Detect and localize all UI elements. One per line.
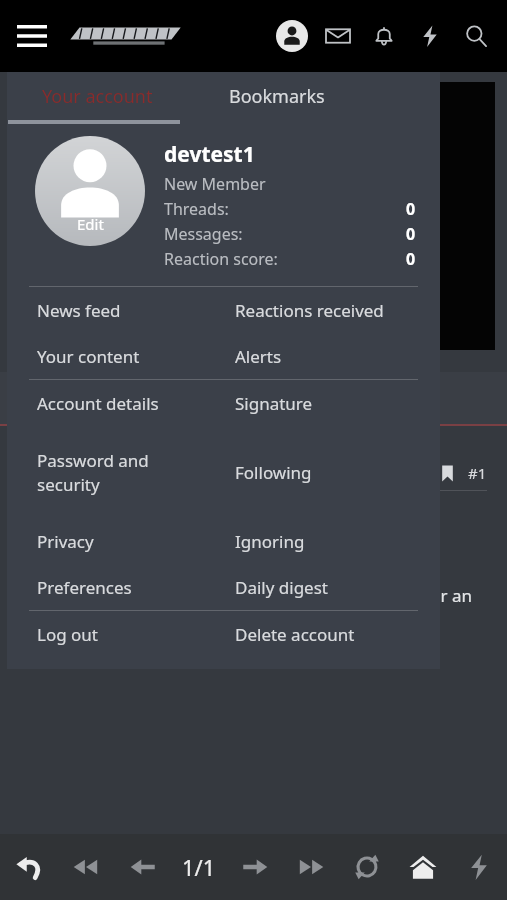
button[interactable]: Delete account	[221, 611, 440, 657]
button[interactable]: Alerts	[221, 333, 440, 379]
staticText: Messages:	[164, 223, 243, 245]
staticText: Reaction score:	[164, 248, 278, 270]
staticText: New Member	[164, 173, 266, 195]
button[interactable]: Alerts	[361, 13, 407, 59]
button[interactable]: Edit	[35, 136, 416, 270]
button[interactable]: Your account	[269, 13, 315, 59]
button[interactable]: Following	[221, 426, 440, 518]
staticText: Password and security	[37, 449, 149, 496]
button[interactable]: Reply	[0, 834, 57, 900]
button[interactable]: Ignoring	[221, 518, 440, 564]
staticText: 0	[406, 223, 416, 245]
staticText: Log out	[37, 623, 98, 646]
staticText: Threads:	[164, 198, 229, 220]
button[interactable]: Signature	[221, 380, 440, 426]
staticText: Reactions received	[235, 299, 384, 322]
button[interactable]: Reactions received	[221, 287, 440, 333]
staticText: devtest1	[164, 140, 255, 169]
staticText: Daily digest	[235, 576, 328, 599]
button[interactable]: First page	[57, 834, 114, 900]
button[interactable]: Password and security	[7, 426, 221, 518]
button[interactable]: Search	[453, 13, 499, 59]
button[interactable]: Inbox	[315, 13, 361, 59]
button[interactable]: Menu	[8, 12, 56, 60]
staticText: #1	[468, 463, 487, 483]
button[interactable]: Account details	[7, 380, 221, 426]
staticText: 0	[406, 248, 416, 270]
staticText: News feed	[37, 299, 121, 322]
button[interactable]: Refresh	[339, 834, 395, 900]
staticText: Delete account	[235, 623, 355, 646]
staticText: Preferences	[37, 576, 132, 599]
button[interactable]: Home	[395, 834, 451, 900]
staticText: Your account	[42, 84, 153, 109]
button[interactable]: Log out	[7, 611, 221, 657]
button[interactable]: Privacy	[7, 518, 221, 564]
staticText: Signature	[235, 392, 313, 415]
button[interactable]: Your content	[7, 333, 221, 379]
staticText: Following	[235, 461, 312, 484]
staticText: 0	[406, 198, 416, 220]
button[interactable]: What's new	[451, 834, 507, 900]
staticText: Bookmarks	[229, 84, 325, 109]
staticText: Edit	[77, 214, 104, 234]
staticText: Account details	[37, 392, 159, 415]
button[interactable]: Your account	[7, 72, 187, 120]
staticText: We have completed a detailed root cause …	[24, 584, 483, 634]
button[interactable]: News feed	[7, 287, 221, 333]
staticText: 1/1	[182, 852, 216, 882]
staticText: Privacy	[37, 530, 94, 553]
button[interactable]: Previous page	[114, 834, 171, 900]
button[interactable]: 1/1	[171, 834, 227, 900]
button[interactable]: Gladiator Forum home	[68, 21, 183, 51]
button[interactable]: Daily digest	[221, 564, 440, 610]
button[interactable]: Last page	[283, 834, 339, 900]
button[interactable]: Next page	[227, 834, 283, 900]
button[interactable]: Bookmarks	[187, 72, 367, 120]
button[interactable]: Preferences	[7, 564, 221, 610]
staticText: :::Attention JT Flush Tail Light Owners …	[24, 511, 483, 562]
staticText: Alerts	[235, 345, 282, 368]
staticText: Ignoring	[235, 530, 305, 553]
button[interactable]: Bookmark	[432, 458, 462, 488]
staticText: Your content	[37, 345, 140, 368]
staticText: Wednesday at 12:25 PM	[20, 463, 189, 483]
button[interactable]: What's new	[407, 13, 453, 59]
